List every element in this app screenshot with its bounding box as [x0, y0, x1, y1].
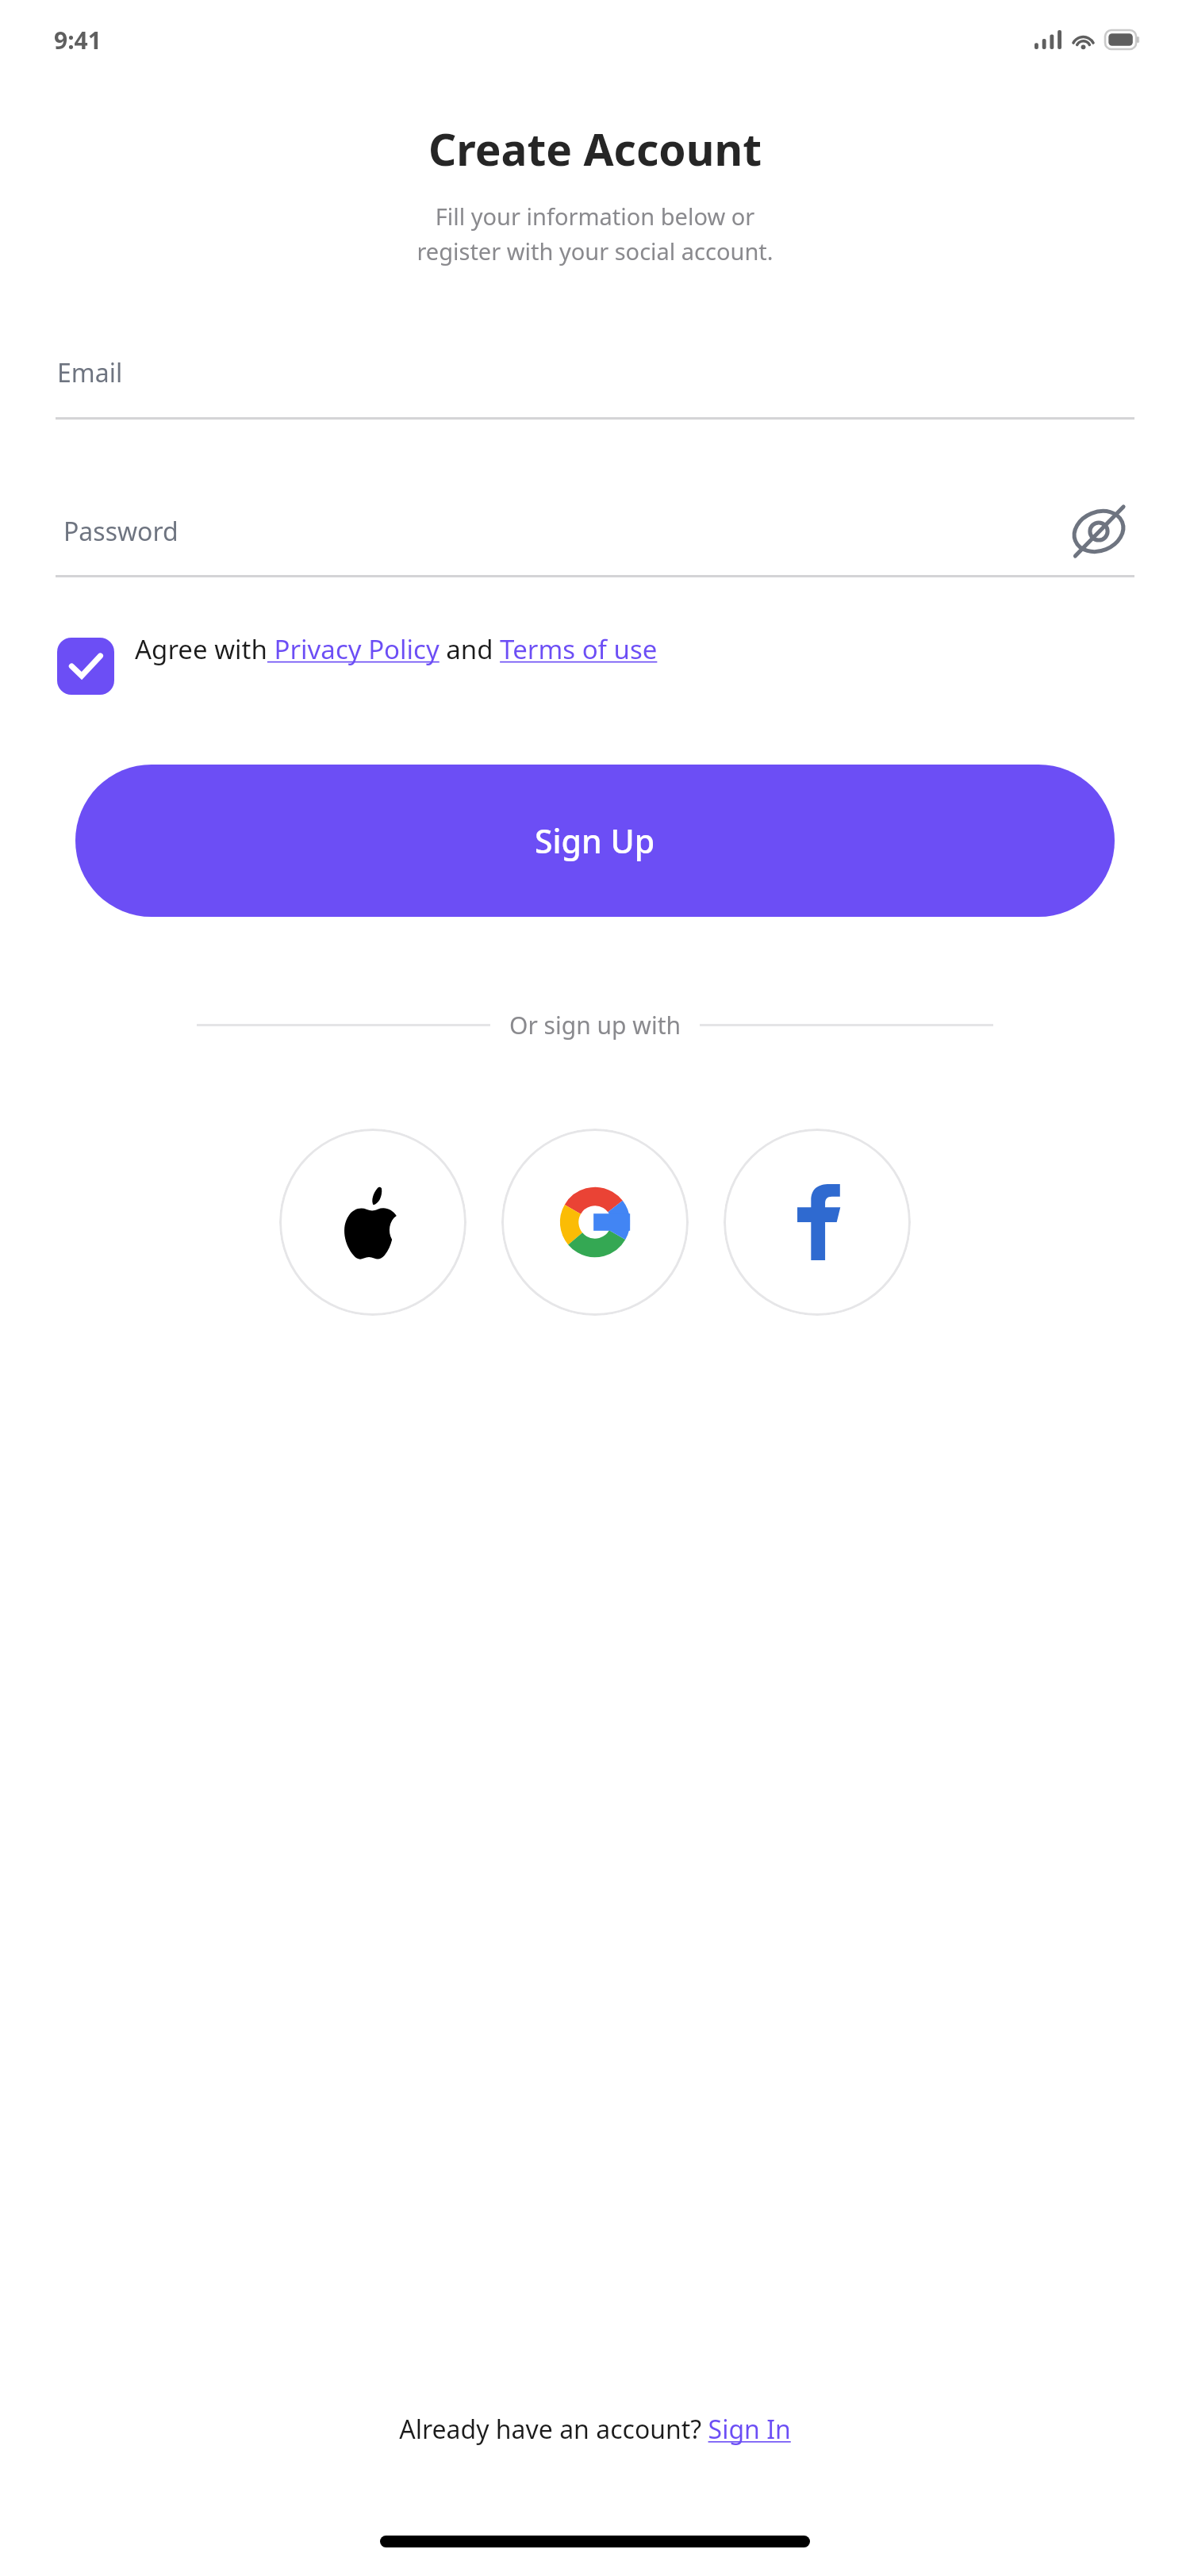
button[interactable]: Sign Up — [75, 765, 1115, 917]
button[interactable]: Sign up with Google — [501, 1129, 689, 1316]
staticText: Agree with Privacy Policy and Terms of u… — [135, 631, 658, 667]
staticText: Fill your information below or register … — [0, 201, 1190, 266]
button[interactable]: Password — [56, 496, 1134, 567]
staticText: Create Account — [0, 119, 1190, 178]
staticText: 9:41 — [54, 24, 102, 56]
staticText: Email — [57, 355, 123, 390]
button[interactable]: Show password — [1063, 496, 1134, 567]
staticText: Sign Up — [535, 818, 655, 863]
button[interactable]: Email — [56, 355, 1134, 420]
staticText: Or sign up with — [509, 1009, 681, 1041]
button[interactable]: Agree with terms checkbox — [57, 638, 114, 695]
staticText: Password — [63, 514, 1063, 549]
button[interactable]: Agree with terms checkbox — [57, 631, 1134, 688]
button[interactable]: Sign up with Facebook — [724, 1129, 911, 1316]
button[interactable]: Already have an account? Sign In — [0, 2412, 1190, 2447]
button[interactable]: Sign up with Apple — [279, 1129, 466, 1316]
